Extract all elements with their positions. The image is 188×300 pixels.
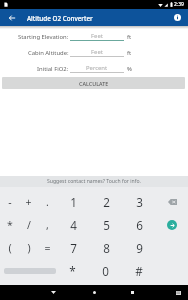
button[interactable]: Navigate up: [0, 9, 23, 26]
button[interactable]: 0: [89, 259, 122, 282]
staticText: Cabin Altitude:: [28, 49, 69, 57]
staticText: ,: [46, 218, 49, 232]
staticText: ft: [127, 33, 132, 41]
staticText: 2: [103, 194, 110, 210]
button[interactable]: =: [38, 236, 57, 259]
button[interactable]: Recent apps: [122, 285, 143, 300]
staticText: =: [44, 241, 51, 255]
staticText: 9: [136, 240, 143, 256]
button[interactable]: 4: [57, 213, 90, 236]
staticText: %: [127, 65, 132, 73]
staticText: 6: [136, 217, 143, 233]
button[interactable]: Suggest contact names? Touch for info.: [0, 176, 188, 187]
staticText: Feet: [91, 32, 103, 40]
button[interactable]: 6: [123, 213, 156, 236]
staticText: 5: [103, 217, 110, 233]
button[interactable]: 3: [123, 190, 156, 213]
button[interactable]: Percent: [70, 61, 124, 77]
button[interactable]: Info: [166, 9, 188, 26]
button[interactable]: 5: [90, 213, 123, 236]
staticText: -: [8, 195, 12, 209]
button[interactable]: /: [19, 213, 38, 236]
button[interactable]: *: [0, 213, 19, 236]
staticText: Feet: [91, 48, 103, 56]
button[interactable]: 1: [57, 190, 90, 213]
staticText: Altitude O2 Converter: [27, 14, 93, 23]
button[interactable]: .: [38, 190, 57, 213]
button[interactable]: Home: [84, 285, 105, 300]
staticText: ft: [127, 49, 132, 57]
staticText: 3: [136, 194, 143, 210]
button[interactable]: -: [0, 190, 19, 213]
staticText: CALCULATE: [79, 80, 109, 87]
staticText: 7: [70, 240, 77, 256]
staticText: 4: [70, 217, 77, 233]
button[interactable]: Back: [43, 285, 64, 300]
button[interactable]: *: [56, 259, 89, 282]
button[interactable]: 2: [90, 190, 123, 213]
button[interactable]: 9: [123, 236, 156, 259]
staticText: Suggest contact names? Touch for info.: [47, 178, 141, 185]
staticText: Percent: [86, 64, 108, 72]
staticText: *: [7, 218, 13, 232]
staticText: /: [27, 218, 31, 232]
button[interactable]: (: [0, 236, 19, 259]
button[interactable]: ,: [38, 213, 57, 236]
staticText: .: [46, 195, 49, 209]
button[interactable]: ): [19, 236, 38, 259]
button[interactable]: Enter: [156, 213, 188, 236]
button[interactable]: #: [122, 259, 155, 282]
button[interactable]: Delete: [156, 190, 188, 213]
staticText: #: [135, 263, 143, 279]
staticText: Starting Elevation:: [18, 33, 69, 41]
staticText: 0: [102, 263, 109, 279]
button[interactable]: Feet: [70, 45, 124, 61]
staticText: ): [27, 241, 31, 255]
button[interactable]: 7: [57, 236, 90, 259]
button[interactable]: 8: [90, 236, 123, 259]
staticText: 1: [70, 194, 77, 210]
button[interactable]: +: [19, 190, 38, 213]
button[interactable]: Feet: [70, 29, 124, 45]
staticText: Initial FiO2:: [37, 65, 69, 73]
staticText: *: [69, 263, 76, 279]
staticText: +: [25, 195, 32, 209]
staticText: (: [8, 241, 12, 255]
staticText: 2:39: [174, 1, 184, 8]
staticText: 8: [103, 240, 110, 256]
button[interactable]: CALCULATE: [2, 77, 185, 89]
button[interactable]: Change keyboard: [169, 285, 188, 300]
